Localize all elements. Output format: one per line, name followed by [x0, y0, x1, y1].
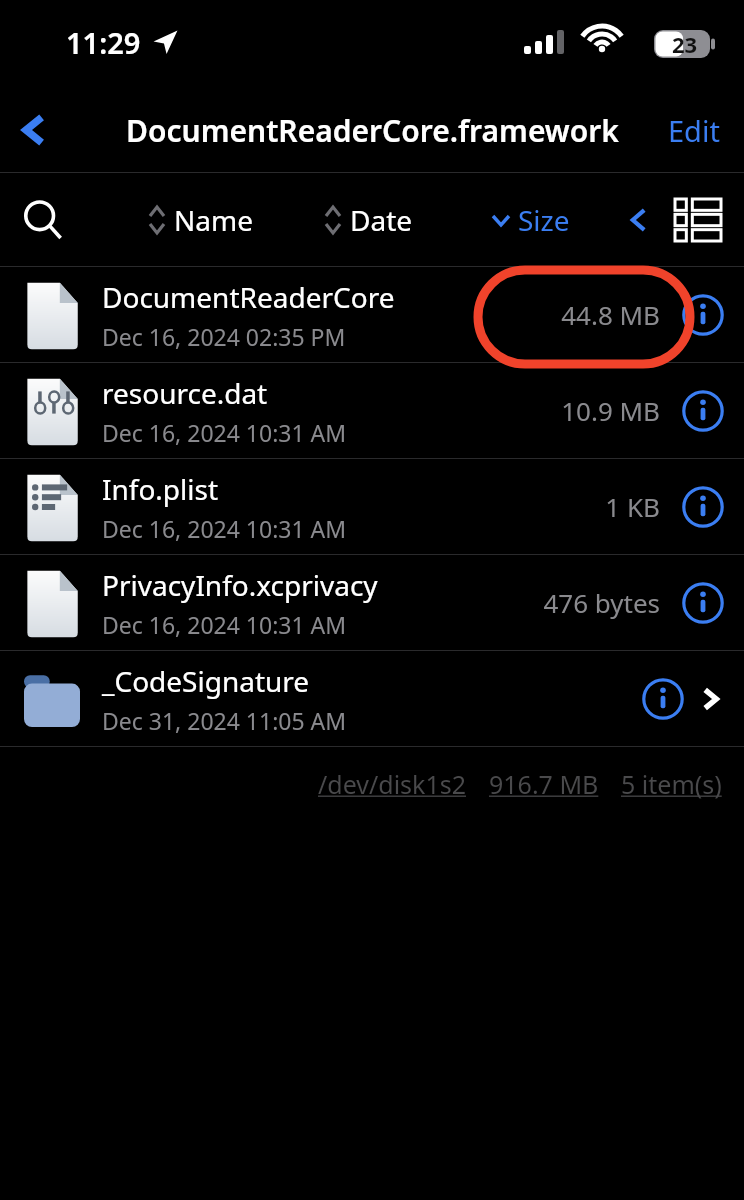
staticText: PrivacyInfo.xcprivacy — [102, 566, 378, 604]
button[interactable]: Open _CodeSignature — [690, 679, 730, 719]
staticText: Dec 31, 2024 11:05 AM — [102, 705, 347, 736]
button[interactable]: /dev/disk1s2 — [318, 767, 467, 801]
staticText: Dec 16, 2024 10:31 AM — [102, 417, 347, 448]
button[interactable]: DocumentReaderCore — [0, 267, 744, 362]
staticText: Dec 16, 2024 10:31 AM — [102, 609, 347, 640]
staticText: _CodeSignature — [102, 662, 310, 700]
button[interactable]: Info for PrivacyInfo.xcprivacy — [676, 576, 730, 630]
staticText: DocumentReaderCore — [102, 278, 395, 316]
staticText: DocumentReaderCore.framework — [126, 110, 619, 151]
staticText: 1 KB — [605, 489, 660, 524]
button[interactable]: 5 item(s) — [621, 767, 722, 801]
staticText: Info.plist — [102, 470, 219, 508]
button[interactable]: Search — [10, 187, 76, 253]
button[interactable]: Edit — [644, 88, 744, 172]
button[interactable]: Info for _CodeSignature — [636, 672, 690, 726]
staticText: resource.dat — [102, 374, 268, 412]
button[interactable]: Date — [322, 200, 413, 240]
button[interactable]: Size — [490, 200, 570, 240]
staticText: Dec 16, 2024 10:31 AM — [102, 513, 347, 544]
staticText: 476 bytes — [543, 585, 660, 620]
button[interactable]: Info for Info.plist — [676, 480, 730, 534]
button[interactable]: Info.plist — [0, 459, 744, 554]
button[interactable]: Info for DocumentReaderCore — [676, 288, 730, 342]
staticText: 10.9 MB — [561, 393, 660, 428]
button[interactable]: resource.dat — [0, 363, 744, 458]
button[interactable]: PrivacyInfo.xcprivacy — [0, 555, 744, 650]
button[interactable]: View options — [670, 192, 726, 248]
staticText: Name — [174, 201, 253, 239]
staticText: Date — [350, 201, 413, 239]
button[interactable]: _CodeSignature — [0, 651, 744, 746]
staticText: Edit — [668, 111, 720, 150]
button[interactable]: Name — [146, 200, 253, 240]
staticText: 44.8 MB — [561, 297, 660, 332]
button[interactable]: Back — [0, 88, 70, 172]
staticText: 23 — [672, 29, 698, 59]
staticText: Dec 16, 2024 02:35 PM — [102, 321, 346, 352]
staticText: Size — [518, 201, 570, 239]
button[interactable]: Previous — [616, 197, 662, 243]
staticText: 11:29 — [66, 23, 141, 62]
button[interactable]: Info for resource.dat — [676, 384, 730, 438]
button[interactable]: 916.7 MB — [489, 767, 599, 801]
